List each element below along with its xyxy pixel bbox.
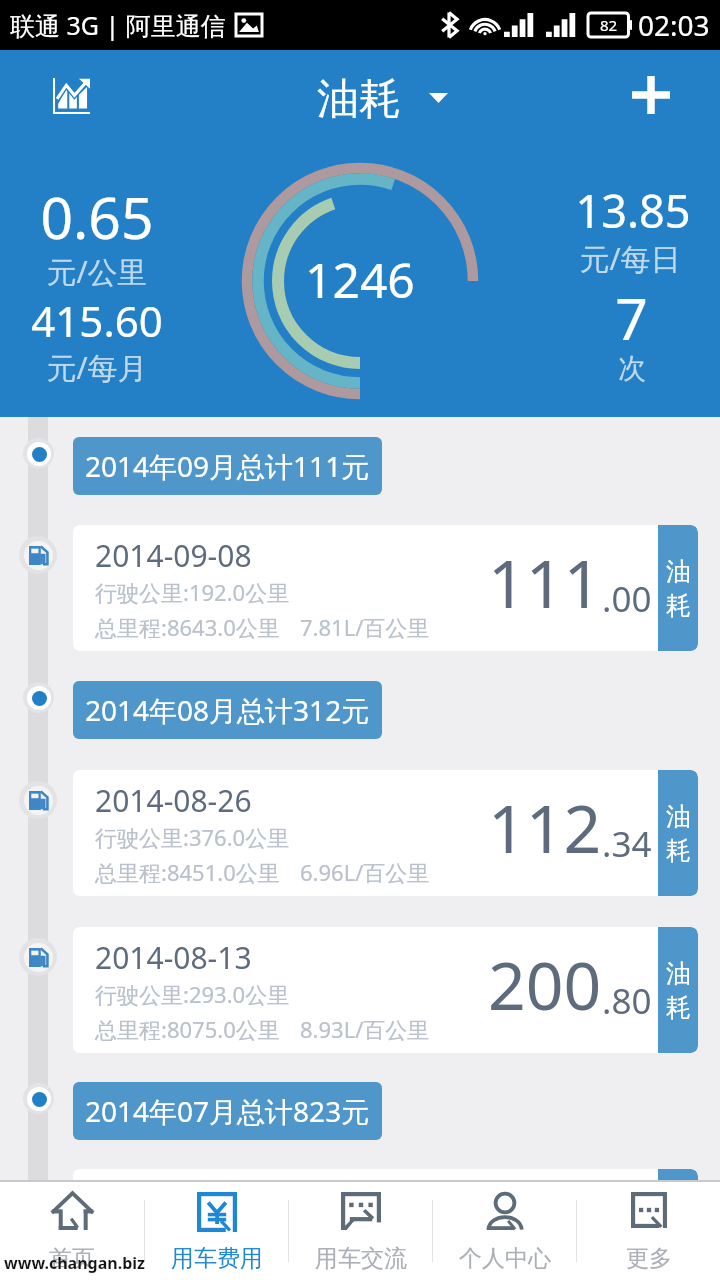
staticText: 7.50L/百公里 (300, 1256, 430, 1280)
button[interactable]: 2014-09-08 (73, 525, 698, 651)
button[interactable]: 个人中心 (433, 1182, 576, 1280)
button[interactable]: 更多 (577, 1182, 720, 1280)
button[interactable]: Statistics (41, 66, 101, 126)
staticText: 111 (488, 537, 602, 627)
staticText: 6.96L/百公里 (300, 857, 430, 887)
staticText: 行驶公里:293.0公里 (95, 979, 290, 1009)
button[interactable]: Add (621, 65, 681, 125)
staticText: 02:03 (638, 6, 710, 44)
staticText: 元/公里 (46, 251, 148, 292)
button[interactable]: 2014年07月总计823元 (73, 1082, 382, 1140)
staticText: 0.65 (40, 178, 154, 256)
staticText: 2014年09月总计111元 (85, 447, 370, 485)
staticText: 耗 (666, 1234, 691, 1265)
staticText: 行驶公里:192.0公里 (95, 577, 290, 607)
staticText: 用车费用 (171, 1244, 263, 1273)
staticText: .00 (602, 575, 652, 623)
staticText: 油 (666, 958, 691, 989)
staticText: 油 (666, 556, 691, 587)
staticText: 耗 (666, 590, 691, 621)
staticText: 次 (618, 351, 646, 386)
button[interactable]: 2014-07-22 (73, 1169, 698, 1280)
staticText: 7 (615, 279, 648, 357)
button[interactable]: 用车费用 (145, 1182, 288, 1280)
staticText: 2014-07-22 (95, 1179, 252, 1220)
staticText: 首页 (49, 1244, 95, 1273)
staticText: 总里程:8075.0公里 (95, 1014, 280, 1044)
staticText: 112 (488, 782, 602, 872)
staticText: 2014-08-26 (95, 780, 252, 821)
staticText: 行驶公里:300.0公里 (95, 1221, 290, 1251)
staticText: 个人中心 (459, 1244, 551, 1273)
staticText: 联通 3G | 阿里通信 (10, 8, 226, 42)
staticText: 油 (666, 801, 691, 832)
button[interactable]: 用车交流 (289, 1182, 432, 1280)
staticText: 180 (488, 1181, 602, 1271)
staticText: 1246 (305, 247, 415, 312)
button[interactable]: 2014年08月总计312元 (73, 681, 382, 739)
staticText: 用车交流 (315, 1244, 407, 1273)
button[interactable]: 油耗 (317, 73, 448, 126)
staticText: .34 (602, 820, 652, 868)
staticText: 2014年08月总计312元 (85, 691, 370, 729)
button[interactable]: 2014-08-26 (73, 770, 698, 896)
staticText: 元/每月 (46, 347, 148, 388)
staticText: 耗 (666, 992, 691, 1023)
staticText: 2014年07月总计823元 (85, 1092, 370, 1130)
staticText: 7.81L/百公里 (300, 612, 430, 642)
staticText: 13.85 (575, 180, 691, 241)
staticText: 更多 (626, 1244, 672, 1273)
button[interactable]: 2014-08-13 (73, 927, 698, 1053)
staticText: 耗 (666, 835, 691, 866)
staticText: 元/每日 (579, 238, 681, 279)
staticText: 行驶公里:376.0公里 (95, 822, 290, 852)
staticText: 油耗 (317, 73, 401, 126)
button[interactable]: 首页 (0, 1182, 144, 1280)
staticText: www.changan.biz (4, 1252, 145, 1274)
staticText: 油 (666, 1200, 691, 1231)
staticText: .80 (602, 977, 652, 1025)
staticText: 200 (488, 939, 602, 1029)
staticText: 2014-09-08 (95, 535, 252, 576)
staticText: 总里程:8451.0公里 (95, 857, 280, 887)
staticText: 总里程:7782.0公里 (95, 1256, 280, 1280)
staticText: 2014-08-13 (95, 937, 252, 978)
staticText: 82 (600, 15, 618, 35)
staticText: 415.60 (31, 292, 163, 349)
staticText: .00 (602, 1219, 652, 1267)
staticText: 8.93L/百公里 (300, 1014, 430, 1044)
staticText: 总里程:8643.0公里 (95, 612, 280, 642)
button[interactable]: 2014年09月总计111元 (73, 437, 382, 495)
